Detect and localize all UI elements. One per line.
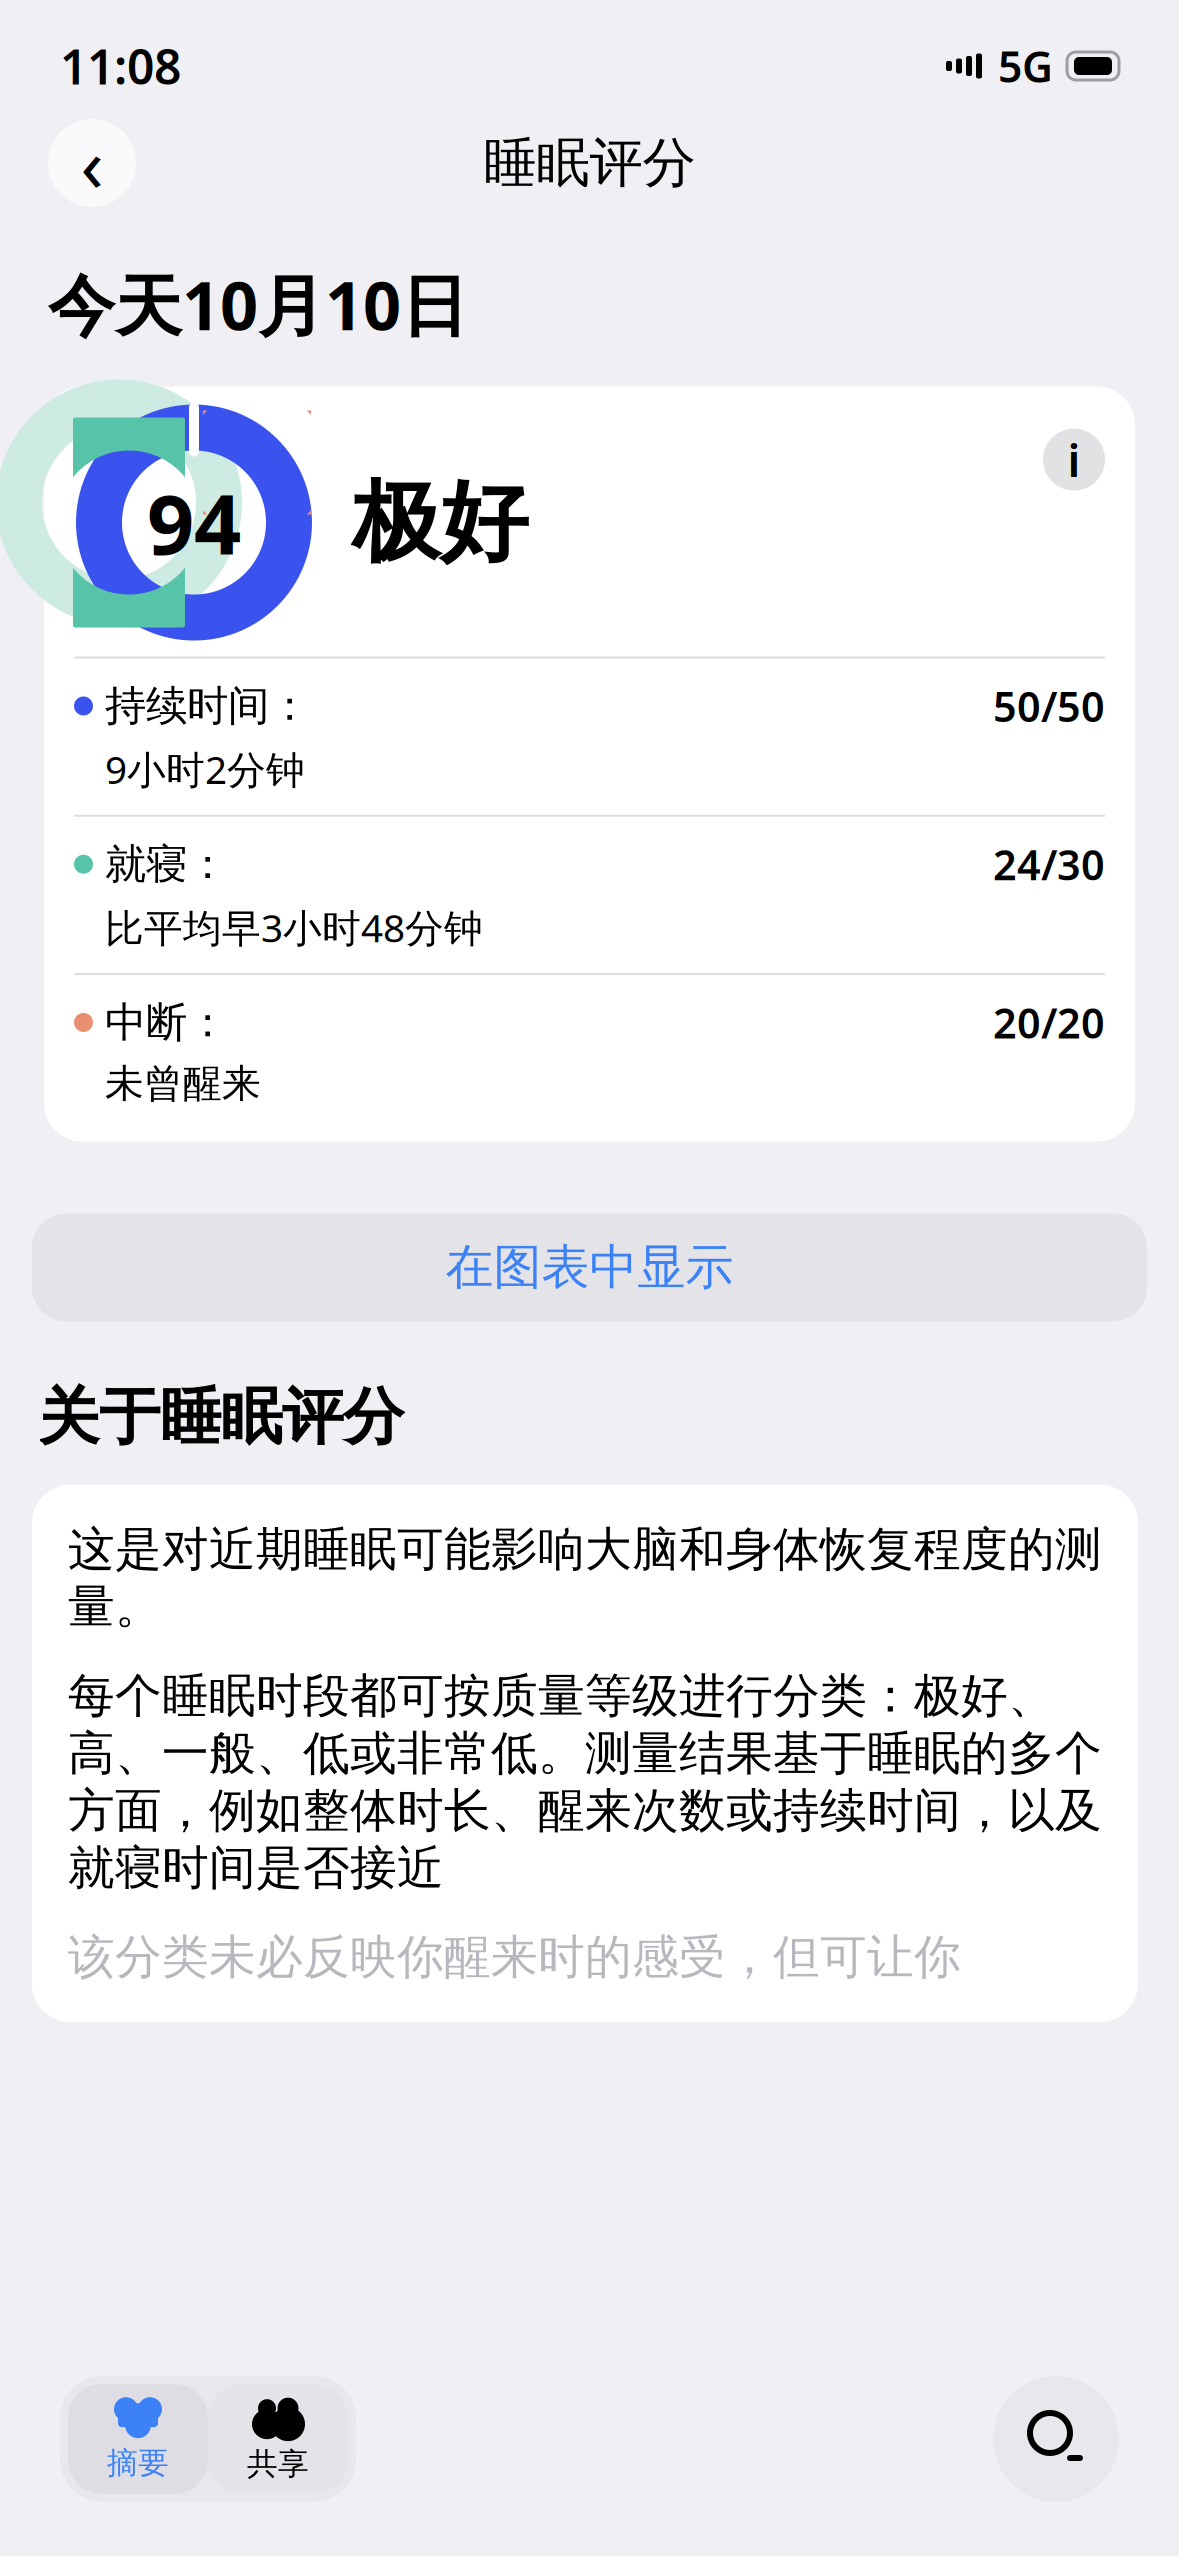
staticText: 中断： xyxy=(105,997,228,1048)
button[interactable]: 返回 xyxy=(48,113,136,213)
button[interactable]: 关于睡眠评分 xyxy=(1043,428,1105,490)
button[interactable]: 搜索 xyxy=(993,2376,1119,2502)
staticText: 20/20 xyxy=(993,995,1105,1050)
staticText: 比平均早3小时48分钟 xyxy=(105,902,483,953)
staticText: 5G xyxy=(998,38,1053,94)
button[interactable]: 在图表中显示 xyxy=(32,1213,1147,1321)
staticText: 每个睡眠时段都可按质量等级进行分类：极好、高、一般、低或非常低。测量结果基于睡眠… xyxy=(68,1667,1102,1897)
staticText: 11:08 xyxy=(60,34,181,98)
staticText: 9小时2分钟 xyxy=(105,743,305,795)
staticText: 持续时间： xyxy=(105,681,310,731)
staticText: 在图表中显示 xyxy=(445,1238,733,1297)
staticText: 关于睡眠评分 xyxy=(38,1379,404,1455)
staticText: 极好 xyxy=(352,468,528,577)
staticText: 该分类未必反映你醒来时的感受，但可让你 xyxy=(68,1929,961,1986)
staticText: 就寝： xyxy=(105,839,228,890)
staticText: ‹ xyxy=(80,113,103,213)
staticText: 24/30 xyxy=(993,837,1105,892)
staticText: 今天10月10日 xyxy=(48,260,468,348)
staticText: 睡眠评分 xyxy=(483,130,695,196)
staticText: i xyxy=(1067,429,1080,490)
button[interactable]: 共享 xyxy=(208,2384,348,2494)
staticText: 摘要 xyxy=(107,2444,169,2482)
staticText: 未曾醒来 xyxy=(105,1060,261,1107)
staticText: 共享 xyxy=(247,2445,309,2483)
staticText: 94 xyxy=(147,468,241,577)
button[interactable]: 摘要 xyxy=(68,2384,208,2494)
staticText: 50/50 xyxy=(993,678,1105,733)
staticText: 这是对近期睡眠可能影响大脑和身体恢复程度的测量。 xyxy=(68,1521,1102,1635)
